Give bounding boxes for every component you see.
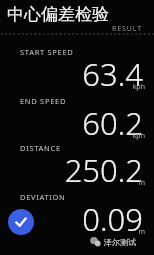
staticText: kph xyxy=(0,131,145,141)
staticText: m xyxy=(0,178,145,188)
staticText: m xyxy=(0,227,145,237)
staticText: 60.2 xyxy=(0,102,143,144)
button[interactable]: Pass xyxy=(8,209,34,235)
staticText: 0.09 xyxy=(0,198,143,240)
staticText: DISTANCE xyxy=(20,143,61,153)
staticText: 250.2 xyxy=(0,149,143,191)
staticText: 泽尔测试 xyxy=(104,237,136,247)
staticText: END SPEED xyxy=(20,96,67,106)
staticText: 中心偏差检验 xyxy=(7,4,109,25)
staticText: RESULT xyxy=(112,24,143,34)
staticText: START SPEED xyxy=(20,47,74,57)
staticText: 63.4 xyxy=(0,53,143,95)
staticText: kph xyxy=(0,82,145,92)
staticText: DEVIATION xyxy=(20,192,66,202)
